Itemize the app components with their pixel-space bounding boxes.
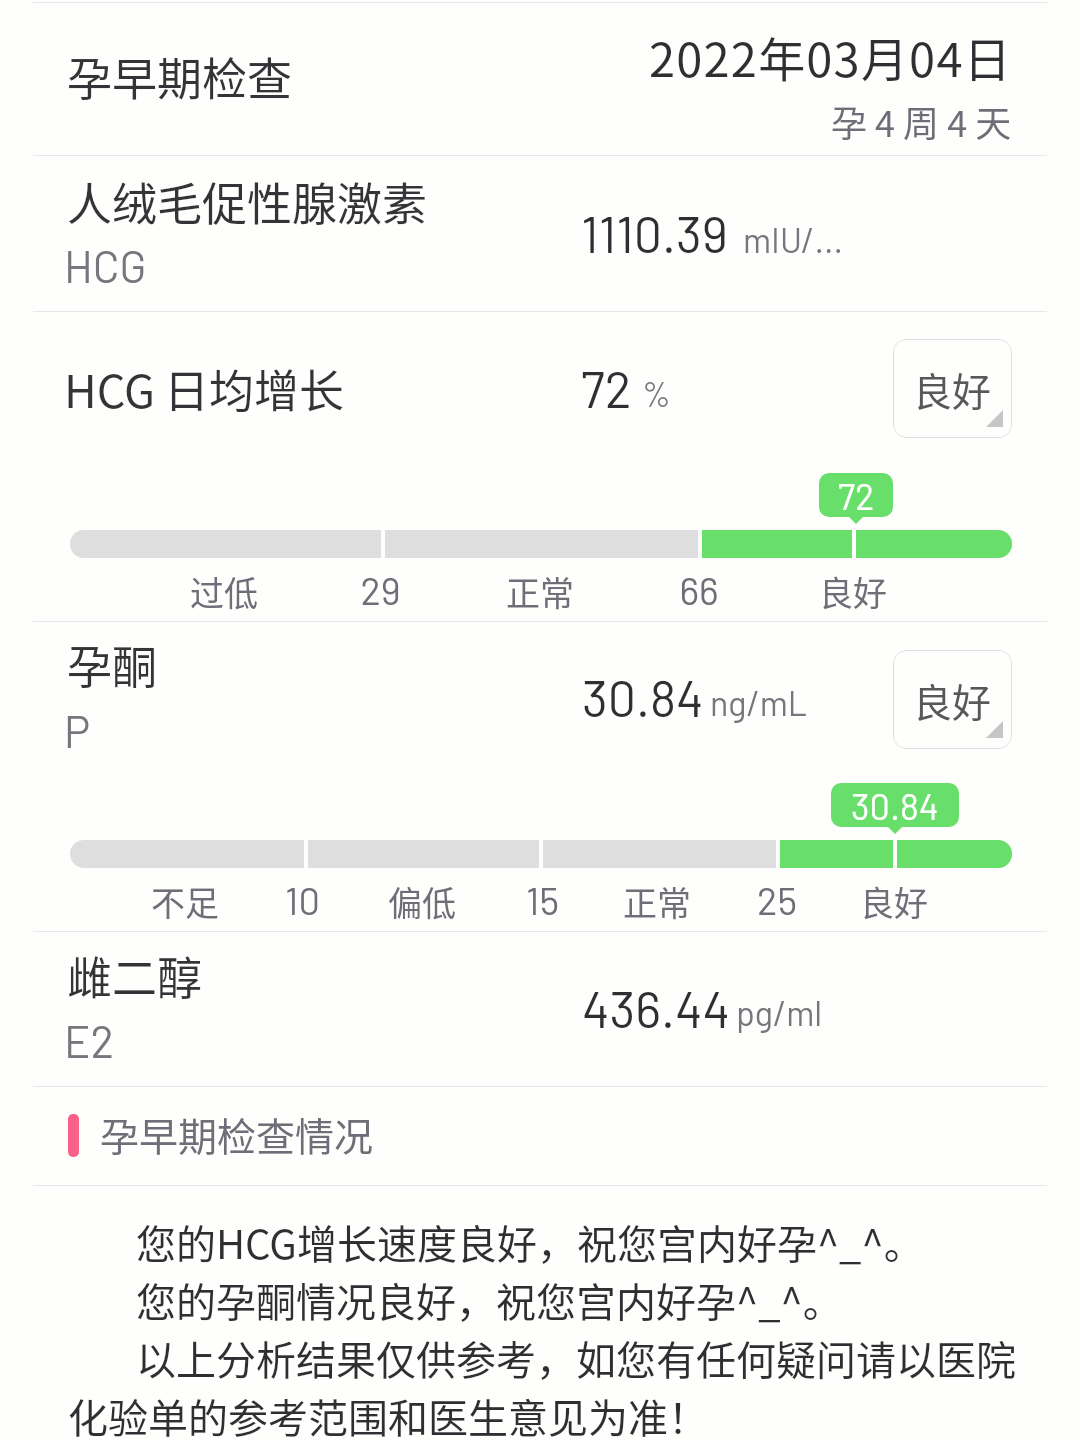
staticText: P (64, 704, 91, 757)
staticText: 以上分析结果仅供参考，如您有任何疑问请以医院化验单的参考范围和医生意见为准！ (68, 1329, 1053, 1440)
staticText: 孕 4 周 4 天 (831, 95, 1012, 147)
staticText: 良好 (913, 361, 992, 417)
staticText: 良好 (860, 877, 928, 926)
staticText: 29 (360, 567, 401, 613)
staticText: 良好 (913, 672, 992, 728)
staticText: 过低 (190, 567, 258, 616)
staticText: 72 (581, 358, 632, 418)
staticText: 66 (679, 567, 719, 613)
staticText: 良好 (819, 567, 887, 616)
staticText: 30.84 (582, 667, 704, 727)
staticText: 不足 (151, 877, 219, 926)
staticText: 孕早期检查 (67, 44, 293, 109)
staticText: 偏低 (388, 877, 456, 926)
staticText: 孕酮 (67, 632, 158, 697)
staticText: 正常 (623, 877, 691, 926)
staticText: 436.44 (582, 978, 731, 1038)
staticText: 您的孕酮情况良好，祝您宫内好孕^_^。 (68, 1271, 843, 1329)
staticText: 您的HCG增长速度良好，祝您宫内好孕^_^。 (68, 1213, 924, 1271)
staticText: % (642, 373, 671, 414)
staticText: HCG (64, 239, 147, 292)
staticText: 1110.39 (581, 203, 728, 263)
button[interactable]: 状态 良好 (893, 339, 1012, 438)
staticText: mIU/... (743, 219, 843, 260)
staticText: 2022年03月04日 (649, 22, 1012, 90)
staticText: 30.84 (851, 784, 939, 827)
button[interactable]: 状态 良好 (893, 650, 1012, 749)
staticText: ng/mL (710, 682, 808, 723)
staticText: 15 (526, 877, 559, 923)
staticText: 雌二醇 (67, 943, 203, 1008)
staticText: E2 (64, 1014, 115, 1067)
staticText: 10 (285, 877, 320, 923)
staticText: 正常 (506, 567, 574, 616)
staticText: 孕早期检查情况 (100, 1106, 374, 1162)
staticText: 人绒毛促性腺激素 (67, 169, 428, 234)
staticText: HCG 日均增长 (64, 356, 345, 421)
staticText: pg/ml (736, 992, 823, 1033)
staticText: 25 (757, 877, 797, 923)
staticText: 72 (838, 474, 875, 517)
